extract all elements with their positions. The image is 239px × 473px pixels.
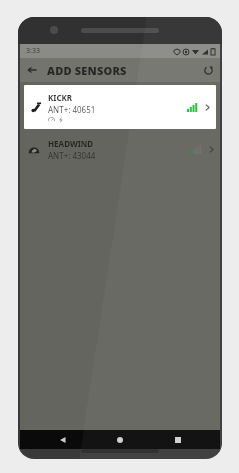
button[interactable]: KICKR bbox=[24, 85, 216, 129]
staticText: ADD SENSORS bbox=[47, 63, 127, 78]
button[interactable]: HEADWIND bbox=[20, 129, 220, 169]
staticText: ANT+: 40651 bbox=[48, 104, 96, 115]
button[interactable]: Back bbox=[23, 61, 41, 79]
button[interactable]: Refresh bbox=[199, 61, 217, 79]
staticText: ANT+: 43044 bbox=[48, 150, 96, 161]
staticText: KICKR bbox=[48, 92, 73, 103]
button[interactable]: Back bbox=[48, 430, 78, 449]
staticText: 3:33 bbox=[26, 46, 40, 56]
staticText: HEADWIND bbox=[48, 138, 94, 149]
button[interactable]: Home bbox=[105, 430, 135, 449]
button[interactable]: Recent apps bbox=[163, 430, 193, 449]
